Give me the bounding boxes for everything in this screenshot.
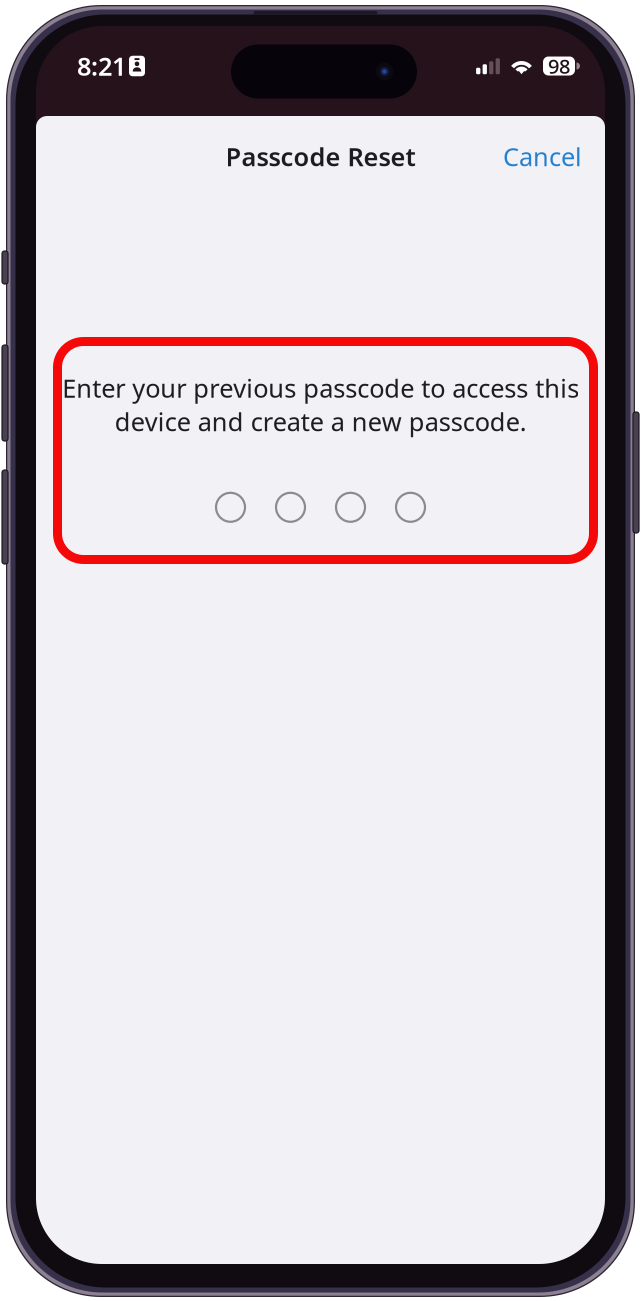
staticText: 8:21 (77, 49, 126, 83)
staticText: Passcode Reset (225, 140, 415, 173)
staticText: Cancel (503, 140, 582, 173)
staticText: 98 (548, 53, 570, 79)
staticText: Enter your previous passcode to access t… (62, 371, 579, 438)
button[interactable]: Cancel (491, 130, 594, 183)
